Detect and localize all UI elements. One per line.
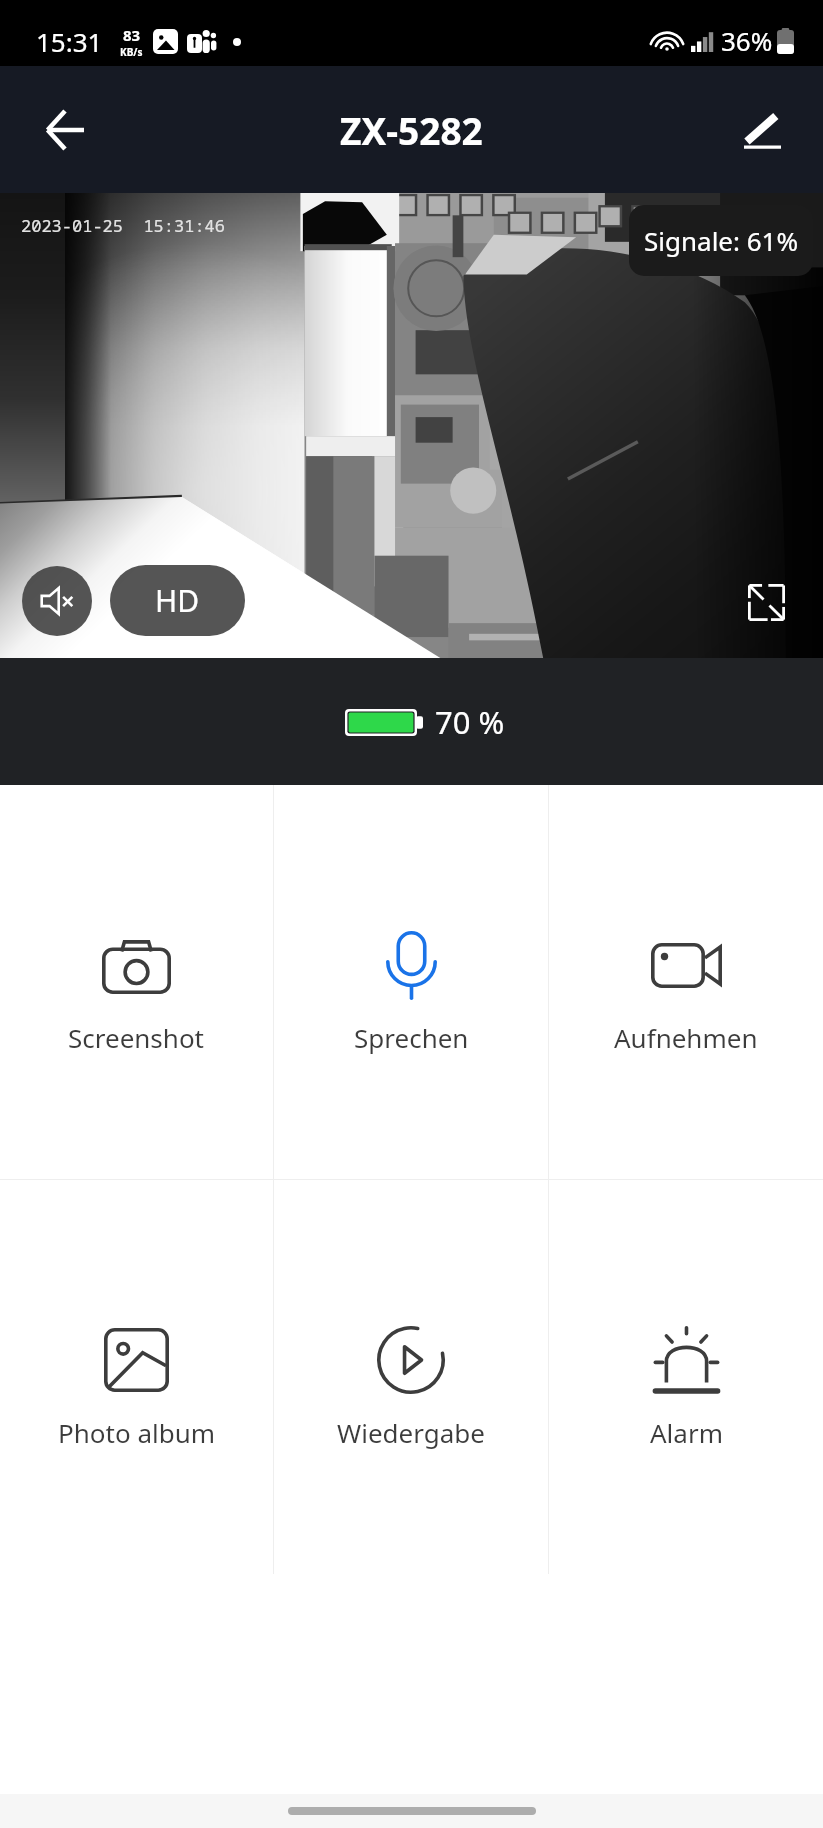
staticText: HD (155, 580, 200, 621)
staticText: Alarm (650, 1415, 723, 1450)
button[interactable]: Back (33, 98, 97, 162)
button[interactable]: Mute (22, 566, 92, 636)
button[interactable]: Sprechen (274, 785, 548, 1179)
button[interactable]: Photo album (0, 1180, 273, 1574)
staticText: Wiedergabe (337, 1415, 485, 1450)
staticText: 15:31 (36, 24, 103, 59)
button[interactable]: HD (110, 565, 245, 636)
button[interactable]: Alarm (549, 1180, 823, 1574)
staticText: KB/s (120, 45, 143, 59)
staticText: ZX-5282 (340, 105, 483, 155)
staticText: 70 % (435, 701, 505, 743)
button[interactable]: Aufnehmen (549, 785, 823, 1179)
staticText: Aufnehmen (614, 1020, 758, 1055)
button[interactable]: Wiedergabe (274, 1180, 548, 1574)
staticText: Screenshot (68, 1020, 205, 1055)
button[interactable]: Edit (731, 99, 793, 161)
staticText: 2023-01-25 15:31:46 (21, 214, 225, 237)
staticText: Photo album (58, 1415, 216, 1450)
button[interactable]: Fullscreen (740, 576, 792, 628)
button[interactable]: Screenshot (0, 785, 273, 1179)
staticText: Signale: 61% (644, 223, 799, 258)
staticText: 36% (721, 23, 773, 58)
staticText: Sprechen (354, 1020, 469, 1055)
button[interactable]: Signale: 61% (629, 205, 813, 276)
staticText: 83 (123, 25, 141, 45)
